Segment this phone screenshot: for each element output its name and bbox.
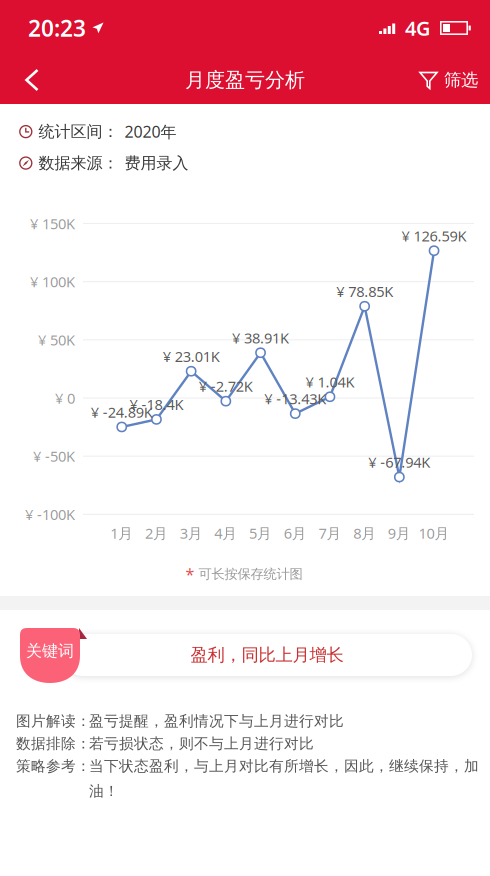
staticText: ¥ 100K [30,272,75,291]
staticText: * [185,563,194,585]
staticText: 20:23 [28,13,86,43]
staticText: ¥ 23.01K [163,346,220,366]
staticText: ¥ 1.04K [305,372,354,392]
button[interactable]: 筛选 [413,57,484,103]
staticText: 统计区间： [39,122,119,141]
staticText: 若亏损状态，则不与上月进行对比 [89,734,314,752]
staticText: 可长按保存统计图 [198,566,302,582]
staticText: 盈利，同比上月增长 [190,644,343,666]
staticText: 10月 [419,523,450,543]
staticText: 8月 [353,523,376,543]
staticText: ¥ -24.89K [91,402,153,422]
button[interactable]: 返回 [10,57,54,103]
staticText: 数据来源： [39,153,119,173]
staticText: 6月 [284,523,307,543]
staticText: 数据排除： [16,734,91,752]
staticText: ¥ -50K [33,446,75,466]
staticText: 当下状态盈利，与上月对比有所增长，因此，继续保持，加油！ [89,757,479,800]
staticText: ¥ -2.72K [199,376,253,396]
staticText: 2月 [145,523,168,543]
staticText: 费用录入 [125,153,189,173]
staticText: ¥ 0 [55,388,75,408]
staticText: 7月 [318,523,341,543]
staticText: 策略参考： [16,757,91,775]
staticText: ¥ 150K [30,214,75,233]
staticText: 5月 [249,523,272,543]
staticText: 关键词 [26,641,74,661]
staticText: ¥ -13.43K [264,389,326,408]
staticText: ¥ -18.4K [129,395,183,414]
staticText: 9月 [388,523,411,543]
staticText: ¥ 50K [38,330,75,350]
staticText: ¥ -100K [25,505,75,524]
staticText: 3月 [180,523,203,543]
staticText: ¥ 78.85K [336,281,393,301]
staticText: 月度盈亏分析 [185,68,305,92]
staticText: 1月 [110,523,133,543]
staticText: 盈亏提醒，盈利情况下与上月进行对比 [89,712,344,730]
staticText: 4月 [214,523,237,543]
staticText: ¥ -67.94K [368,452,430,472]
staticText: ¥ 38.91K [232,328,289,347]
staticText: 图片解读： [16,712,91,730]
staticText: 筛选 [444,69,478,91]
staticText: 4G [405,15,431,41]
staticText: 2020年 [125,121,177,142]
staticText: ¥ 126.59K [402,226,467,245]
